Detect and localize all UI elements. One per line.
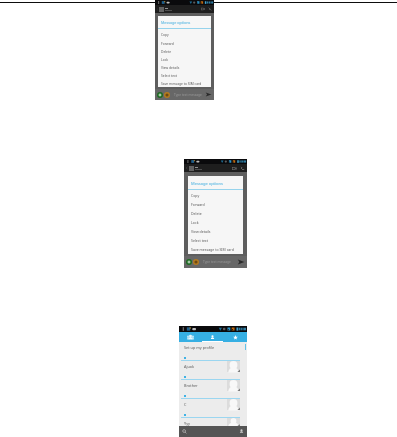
button[interactable]: C: [179, 399, 247, 412]
staticText: Brother: [184, 383, 198, 388]
button[interactable]: Lock: [188, 218, 243, 227]
staticText: Ajuok: [184, 364, 195, 369]
staticText: Save message to SIM card: [161, 81, 202, 85]
staticText: Type text message: [203, 260, 231, 264]
staticText: Copy: [191, 193, 200, 198]
staticText: Delete: [161, 49, 172, 53]
button[interactable]: View details: [188, 227, 243, 236]
button[interactable]: Lock: [158, 55, 211, 63]
button[interactable]: Yyy: [179, 418, 247, 426]
staticText: Select text: [161, 73, 177, 77]
staticText: Yyy: [184, 421, 191, 426]
button[interactable]: Back: [156, 8, 159, 11]
button[interactable]: Delete: [188, 209, 243, 218]
button[interactable]: Add attachment: [157, 92, 163, 98]
button[interactable]: Forward: [188, 200, 243, 209]
button[interactable]: Call: [208, 7, 212, 11]
button[interactable]: Select text: [188, 236, 243, 245]
staticText: Copy: [161, 32, 169, 36]
button[interactable]: View details: [158, 63, 211, 71]
button[interactable]: Forward: [158, 38, 211, 47]
button[interactable]: Brother: [179, 380, 247, 393]
staticText: Select text: [191, 238, 208, 243]
button[interactable]: Send: [205, 91, 212, 98]
button[interactable]: Contacts: [201, 332, 224, 342]
staticText: Save message to SIM card: [191, 247, 234, 252]
staticText: Message options: [191, 181, 223, 186]
button[interactable]: Save message to SIM card: [188, 245, 243, 254]
staticText: Set up my profile: [184, 345, 215, 350]
button[interactable]: Insert smiley: [193, 259, 199, 265]
button[interactable]: Video call: [232, 166, 237, 171]
staticText: Delete: [191, 211, 202, 216]
button[interactable]: Add contact: [239, 429, 244, 434]
staticText: Message options: [161, 20, 191, 25]
staticText: View details: [161, 65, 180, 69]
staticText: C: [184, 402, 187, 407]
button[interactable]: Save message to SIM card: [158, 79, 211, 87]
button[interactable]: Copy: [188, 190, 243, 200]
button[interactable]: Back: [185, 166, 189, 170]
button[interactable]: Insert smiley: [164, 92, 170, 98]
staticText: Forward: [191, 202, 205, 207]
button[interactable]: Search: [182, 429, 187, 434]
button[interactable]: Delete: [158, 47, 211, 55]
button[interactable]: Call: [240, 166, 245, 171]
button[interactable]: Set up my profile: [179, 342, 247, 355]
button[interactable]: Video call: [201, 7, 205, 11]
button[interactable]: Favorites: [224, 332, 247, 342]
staticText: Lock: [161, 57, 169, 61]
button[interactable]: Select text: [158, 71, 211, 79]
button[interactable]: Send: [237, 258, 245, 266]
button[interactable]: Add attachment: [186, 259, 192, 265]
staticText: View details: [191, 229, 211, 234]
button[interactable]: Copy: [158, 29, 211, 38]
staticText: Lock: [191, 220, 199, 225]
button[interactable]: Groups: [179, 332, 201, 342]
staticText: Forward: [161, 41, 174, 45]
staticText: Type text message: [174, 93, 202, 97]
button[interactable]: Ajuok: [179, 361, 247, 374]
